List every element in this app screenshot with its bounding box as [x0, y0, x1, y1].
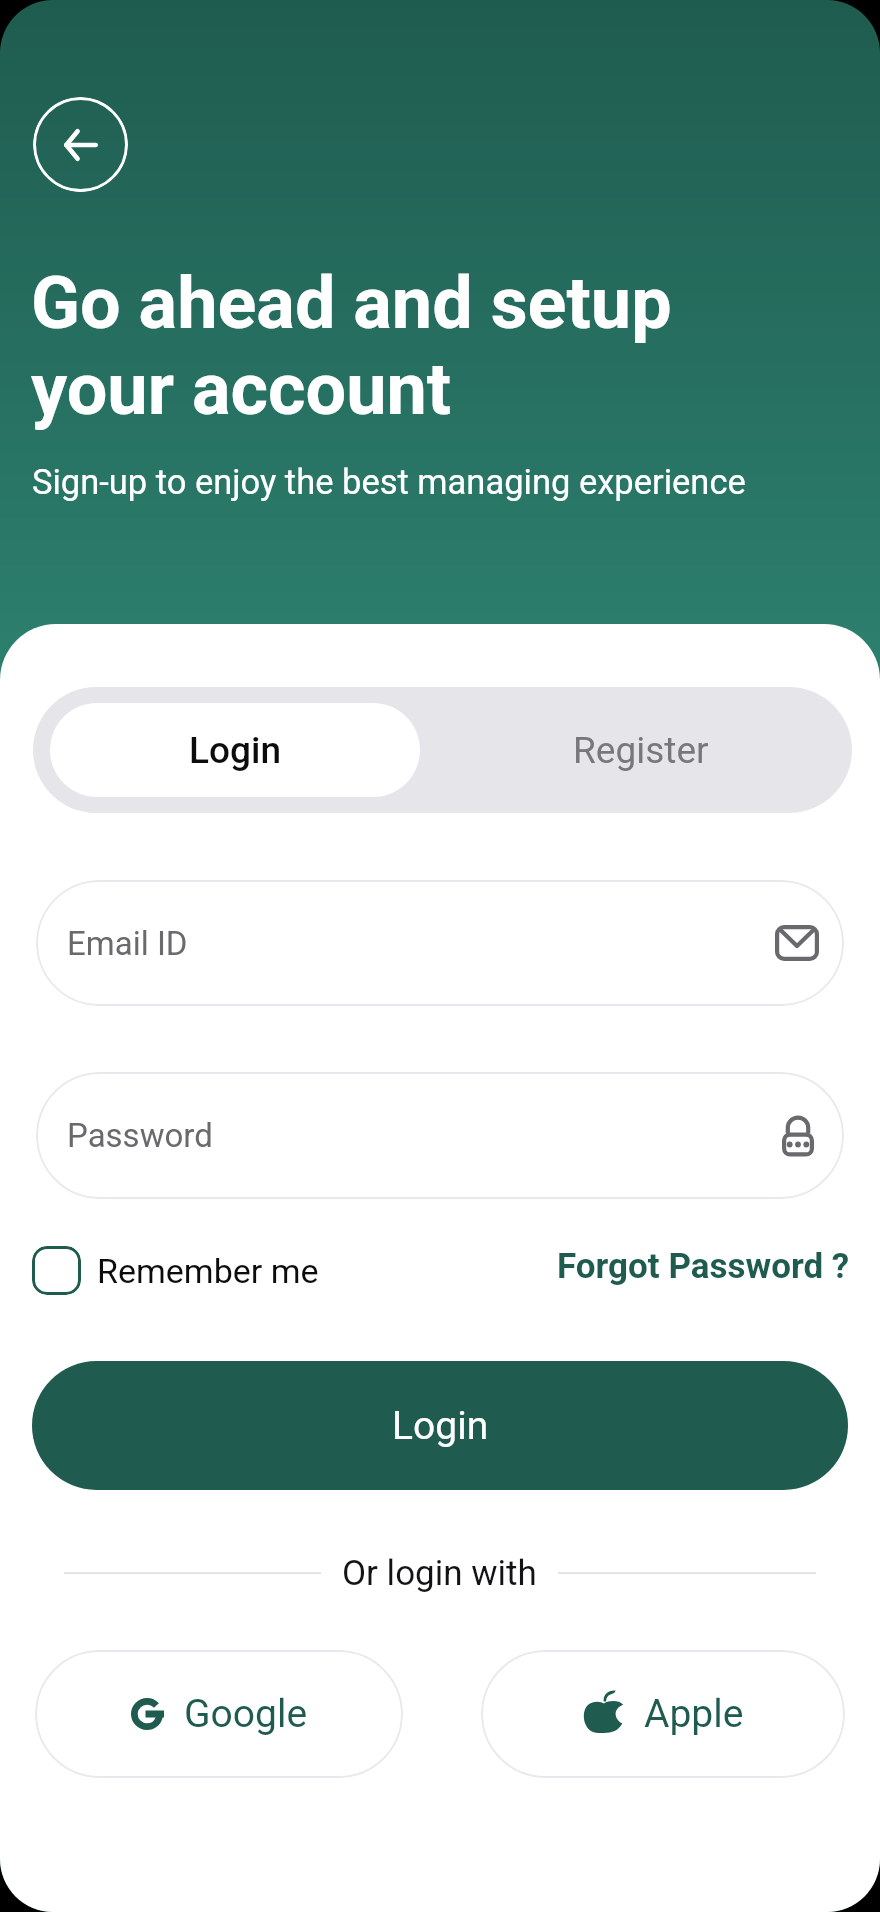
button[interactable]: Remember me: [32, 1246, 319, 1295]
button[interactable]: Register: [444, 687, 838, 813]
button[interactable]: Email ID: [36, 880, 844, 1006]
staticText: Or login with: [342, 1553, 537, 1594]
staticText: Apple: [644, 1691, 744, 1737]
staticText: Remember me: [97, 1251, 319, 1291]
staticText: Email ID: [67, 924, 188, 963]
staticText: Password: [67, 1116, 213, 1155]
button[interactable]: Password: [36, 1072, 844, 1199]
staticText: Forgot Password ?: [557, 1246, 850, 1287]
button[interactable]: Login: [32, 1361, 848, 1490]
staticText: Google: [184, 1691, 308, 1737]
staticText: Sign-up to enjoy the best managing exper…: [32, 462, 746, 502]
staticText: Login: [392, 1403, 489, 1449]
button[interactable]: Google: [35, 1650, 403, 1778]
button[interactable]: Login: [50, 703, 420, 797]
staticText: Login: [189, 729, 281, 772]
staticText: Register: [573, 729, 709, 772]
button[interactable]: Apple: [481, 1650, 845, 1778]
button[interactable]: Back: [33, 97, 128, 192]
staticText: Go ahead and setup your account: [31, 261, 672, 432]
button[interactable]: Forgot Password ?: [468, 1241, 850, 1291]
